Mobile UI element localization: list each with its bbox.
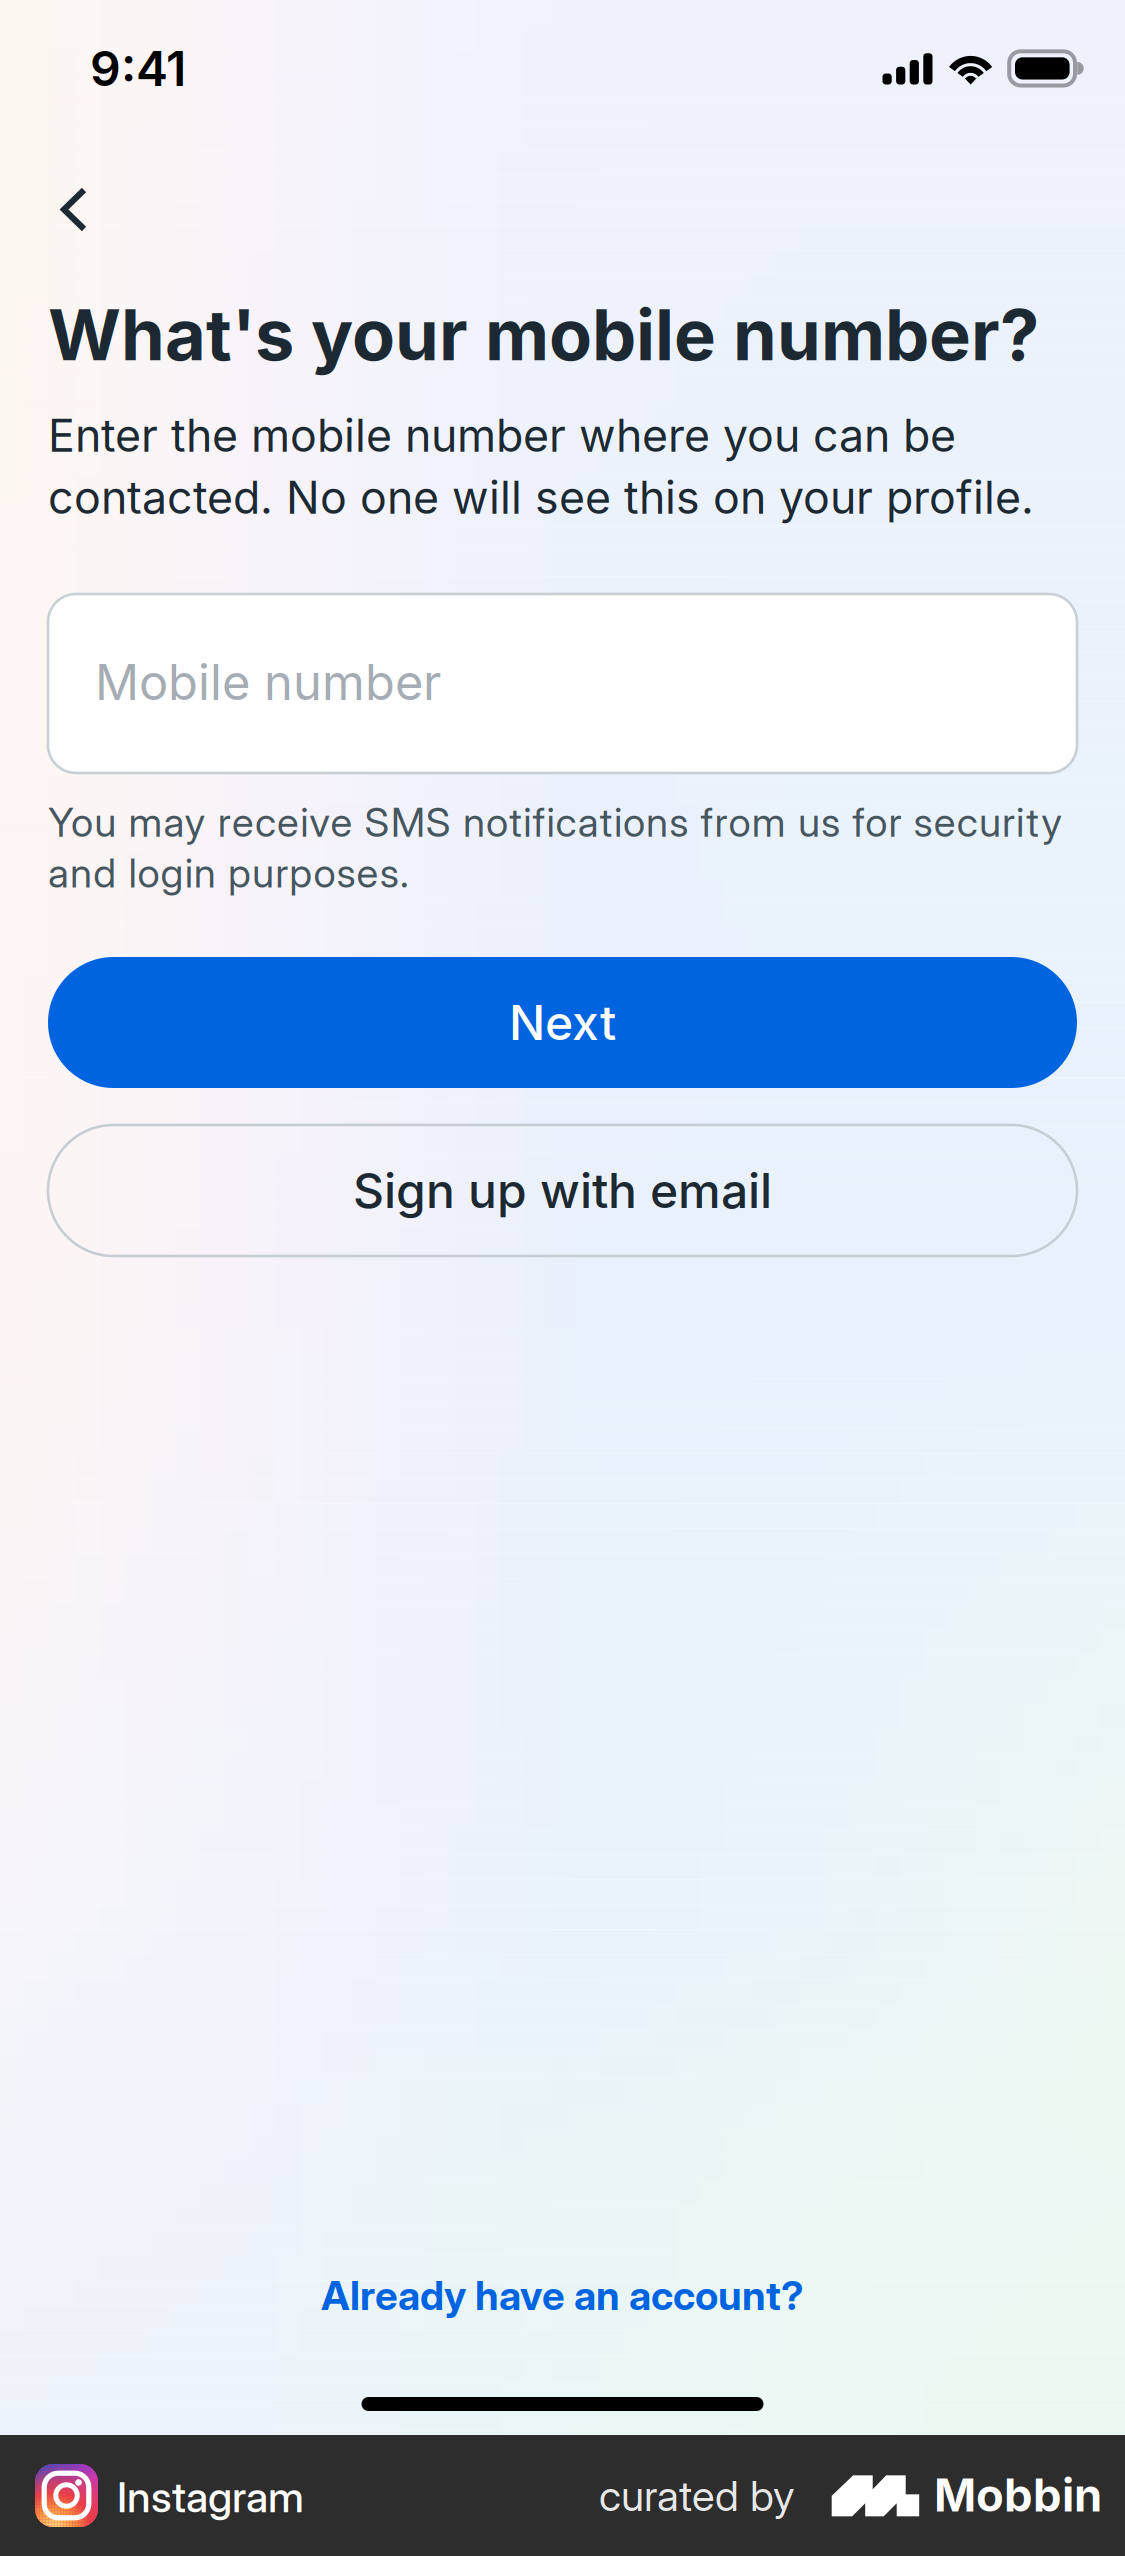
staticText: curated by — [599, 2470, 795, 2521]
button[interactable]: Sign up with email — [48, 1125, 1077, 1256]
staticText: contacted. No one will see this on your … — [48, 470, 1034, 524]
staticText: Instagram — [117, 2471, 304, 2522]
staticText: Mobbin — [934, 2468, 1102, 2522]
staticText: Mobile number — [95, 653, 441, 712]
button[interactable]: Already have an account? — [212, 2252, 912, 2338]
staticText: Sign up with email — [353, 1161, 772, 1220]
staticText: Enter the mobile number where you can be — [48, 408, 956, 462]
staticText: Already have an account? — [321, 2271, 804, 2320]
button[interactable]: Next — [48, 957, 1077, 1088]
staticText: 9:41 — [90, 39, 186, 98]
staticText: and login purposes. — [48, 849, 409, 897]
button[interactable]: Back — [0, 148, 142, 271]
staticText: You may receive SMS notifications from u… — [48, 798, 1062, 846]
staticText: What's your mobile number? — [48, 292, 1039, 377]
staticText: Next — [509, 993, 616, 1052]
